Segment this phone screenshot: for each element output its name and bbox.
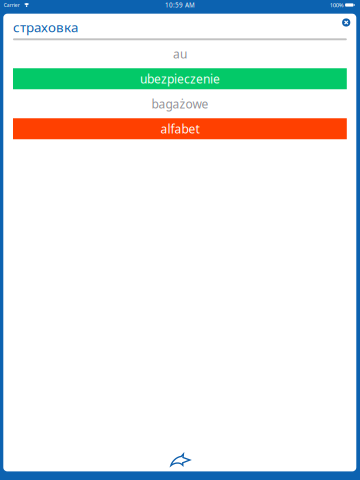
staticText: alfabet bbox=[160, 121, 199, 137]
staticText: Carrier bbox=[4, 2, 20, 8]
staticText: bagażowe bbox=[151, 96, 208, 112]
button[interactable]: Clear text bbox=[338, 14, 355, 31]
button[interactable]: ubezpieczenie bbox=[13, 66, 347, 91]
staticText: страховка bbox=[13, 18, 78, 36]
button[interactable]: Dolphin translator bbox=[164, 447, 196, 470]
staticText: 100% bbox=[330, 1, 344, 9]
button[interactable]: alfabet bbox=[13, 116, 347, 141]
button[interactable]: bagażowe bbox=[13, 91, 347, 116]
staticText: au bbox=[173, 46, 187, 62]
button[interactable]: au bbox=[13, 41, 347, 66]
staticText: 10:59 AM bbox=[165, 1, 195, 9]
staticText: ubezpieczenie bbox=[140, 71, 220, 87]
